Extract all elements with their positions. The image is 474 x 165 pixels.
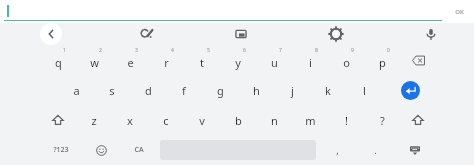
button[interactable]: k bbox=[310, 75, 346, 105]
button[interactable]: p bbox=[364, 45, 400, 75]
button[interactable]: v bbox=[184, 105, 220, 135]
staticText: x bbox=[127, 113, 133, 128]
button[interactable]: ? bbox=[364, 105, 400, 135]
staticText: h bbox=[253, 83, 260, 98]
button[interactable]: Shift bbox=[40, 105, 76, 135]
staticText: k bbox=[325, 83, 331, 98]
staticText: j bbox=[291, 83, 294, 98]
button[interactable]: OK bbox=[444, 0, 474, 23]
button[interactable]: m bbox=[292, 105, 328, 135]
button[interactable]: q bbox=[40, 45, 76, 75]
staticText: , bbox=[336, 144, 339, 156]
button[interactable]: w bbox=[76, 45, 112, 75]
staticText: 8 bbox=[315, 47, 318, 54]
button[interactable]: o bbox=[328, 45, 364, 75]
staticText: 9 bbox=[351, 47, 354, 54]
staticText: d bbox=[145, 83, 152, 98]
staticText: 5 bbox=[207, 47, 210, 54]
button[interactable]: Hide keyboard bbox=[394, 135, 436, 165]
button[interactable]: g bbox=[202, 75, 238, 105]
staticText: 4 bbox=[171, 47, 174, 54]
button[interactable]: r bbox=[148, 45, 184, 75]
button[interactable]: b bbox=[220, 105, 256, 135]
button[interactable]: s bbox=[94, 75, 130, 105]
button[interactable]: CA bbox=[120, 135, 158, 165]
staticText: s bbox=[109, 83, 115, 98]
button[interactable]: Translate bbox=[138, 25, 156, 43]
button[interactable]: i bbox=[292, 45, 328, 75]
button[interactable]: l bbox=[346, 75, 382, 105]
button[interactable]: d bbox=[130, 75, 166, 105]
button[interactable]: h bbox=[238, 75, 274, 105]
staticText: f bbox=[182, 83, 186, 98]
button[interactable]: Back bbox=[40, 23, 62, 45]
staticText: t bbox=[200, 55, 204, 70]
staticText: 1 bbox=[63, 47, 66, 54]
staticText: a bbox=[73, 83, 80, 98]
button[interactable]: Settings bbox=[327, 25, 345, 43]
button[interactable]: Voice input bbox=[422, 25, 440, 43]
staticText: m bbox=[305, 113, 316, 128]
button[interactable]: y bbox=[220, 45, 256, 75]
staticText: w bbox=[90, 55, 99, 70]
staticText: 6 bbox=[243, 47, 246, 54]
staticText: 3 bbox=[135, 47, 138, 54]
button[interactable]: j bbox=[274, 75, 310, 105]
button[interactable]: z bbox=[76, 105, 112, 135]
staticText: g bbox=[217, 83, 224, 98]
button[interactable] bbox=[4, 0, 442, 23]
staticText: ?123 bbox=[53, 145, 69, 155]
staticText: OK bbox=[455, 8, 464, 16]
staticText: ? bbox=[380, 113, 385, 128]
button[interactable]: f bbox=[166, 75, 202, 105]
staticText: l bbox=[363, 83, 366, 98]
staticText: z bbox=[91, 113, 97, 128]
button[interactable]: ?123 bbox=[40, 135, 82, 165]
button[interactable]: u bbox=[256, 45, 292, 75]
button[interactable]: c bbox=[148, 105, 184, 135]
button[interactable]: ! bbox=[328, 105, 364, 135]
button[interactable]: t bbox=[184, 45, 220, 75]
button[interactable]: Shift bbox=[400, 105, 436, 135]
staticText: e bbox=[127, 55, 134, 70]
staticText: c bbox=[163, 113, 169, 128]
button[interactable]: . bbox=[356, 135, 394, 165]
staticText: . bbox=[374, 144, 377, 156]
staticText: 2 bbox=[99, 47, 102, 54]
staticText: v bbox=[199, 113, 205, 128]
button[interactable]: Enter bbox=[385, 75, 436, 105]
staticText: y bbox=[235, 55, 241, 70]
button[interactable]: Clipboard bbox=[232, 25, 250, 43]
staticText: CA bbox=[134, 145, 144, 155]
staticText: n bbox=[271, 113, 278, 128]
staticText: o bbox=[343, 55, 350, 70]
staticText: i bbox=[309, 55, 312, 70]
button[interactable]: a bbox=[58, 75, 94, 105]
staticText: b bbox=[235, 113, 242, 128]
button[interactable]: x bbox=[112, 105, 148, 135]
button[interactable]: e bbox=[112, 45, 148, 75]
staticText: q bbox=[55, 55, 62, 70]
staticText: p bbox=[379, 55, 386, 70]
button[interactable]: Emoji bbox=[82, 135, 120, 165]
button[interactable]: , bbox=[318, 135, 356, 165]
button[interactable]: Backspace bbox=[400, 45, 436, 75]
staticText: 7 bbox=[279, 47, 282, 54]
staticText: u bbox=[271, 55, 278, 70]
staticText: ! bbox=[345, 113, 348, 128]
button[interactable]: n bbox=[256, 105, 292, 135]
staticText: r bbox=[164, 55, 169, 70]
staticText: 0 bbox=[387, 47, 390, 54]
